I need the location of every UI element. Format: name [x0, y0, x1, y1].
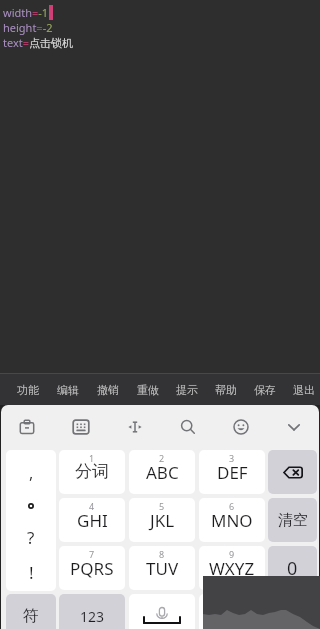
- button[interactable]: 保存: [245, 374, 284, 405]
- staticText: ?: [27, 526, 35, 549]
- staticText: 5: [159, 500, 165, 512]
- button[interactable]: Keyboard layout: [54, 405, 108, 449]
- button[interactable]: 1: [59, 450, 125, 494]
- button[interactable]: 0: [268, 546, 317, 590]
- staticText: TUV: [146, 557, 179, 580]
- staticText: 保存: [254, 383, 276, 397]
- button[interactable]: Backspace: [268, 450, 317, 494]
- staticText: 编辑: [57, 383, 79, 397]
- staticText: 重做: [137, 383, 159, 397]
- staticText: 撤销: [97, 383, 119, 397]
- staticText: height=-2: [3, 20, 53, 35]
- button[interactable]: 撤销: [88, 374, 128, 405]
- staticText: 4: [89, 500, 95, 512]
- staticText: MNO: [211, 509, 253, 532]
- button[interactable]: Search: [161, 405, 214, 449]
- staticText: !: [29, 561, 34, 584]
- staticText: 7: [89, 548, 95, 560]
- staticText: 6: [229, 500, 235, 512]
- staticText: 0: [287, 556, 298, 581]
- button[interactable]: 重做: [128, 374, 167, 405]
- button[interactable]: 帮助: [206, 374, 245, 405]
- button[interactable]: 7: [59, 546, 125, 590]
- button[interactable]: 5: [129, 498, 195, 542]
- button[interactable]: Emoji: [214, 405, 267, 449]
- staticText: WXYZ: [209, 557, 255, 580]
- button[interactable]: Newline: [199, 594, 265, 629]
- button[interactable]: 2: [129, 450, 195, 494]
- staticText: GHI: [77, 509, 108, 532]
- button[interactable]: 4: [59, 498, 125, 542]
- button[interactable]: 退出: [284, 374, 320, 405]
- staticText: 退出: [293, 383, 315, 397]
- button[interactable]: Clipboard: [0, 405, 54, 449]
- button[interactable]: 3: [199, 450, 265, 494]
- button[interactable]: Enter: [268, 594, 317, 629]
- staticText: 提示: [176, 383, 198, 397]
- button[interactable]: Hide keyboard: [267, 405, 320, 449]
- staticText: 帮助: [215, 383, 237, 397]
- staticText: 123: [80, 607, 105, 626]
- staticText: 符: [23, 606, 39, 626]
- staticText: 分词: [75, 461, 109, 482]
- staticText: 2: [159, 452, 165, 464]
- button[interactable]: 123: [59, 594, 125, 629]
- button[interactable]: Move cursor: [108, 405, 161, 449]
- staticText: DEF: [217, 461, 248, 484]
- button[interactable]: 清空: [268, 498, 317, 542]
- staticText: JKL: [150, 509, 175, 532]
- staticText: 3: [229, 452, 235, 464]
- staticText: 9: [229, 548, 235, 560]
- button[interactable]: 6: [199, 498, 265, 542]
- button[interactable]: 9: [199, 546, 265, 590]
- button[interactable]: 提示: [167, 374, 206, 405]
- staticText: width=-1: [3, 5, 49, 20]
- staticText: PQRS: [70, 557, 114, 580]
- button[interactable]: 功能: [8, 374, 48, 405]
- button[interactable]: 编辑: [48, 374, 88, 405]
- staticText: text=点击锁机: [3, 35, 74, 50]
- staticText: 1: [89, 452, 95, 464]
- staticText: ABC: [146, 461, 179, 484]
- staticText: 8: [159, 548, 165, 560]
- button[interactable]: 8: [129, 546, 195, 590]
- staticText: 功能: [17, 383, 39, 397]
- button[interactable]: 符: [6, 594, 56, 629]
- staticText: ,: [29, 462, 34, 484]
- staticText: 清空: [278, 511, 308, 530]
- button[interactable]: ,: [6, 450, 56, 591]
- button[interactable]: Space: [129, 594, 195, 629]
